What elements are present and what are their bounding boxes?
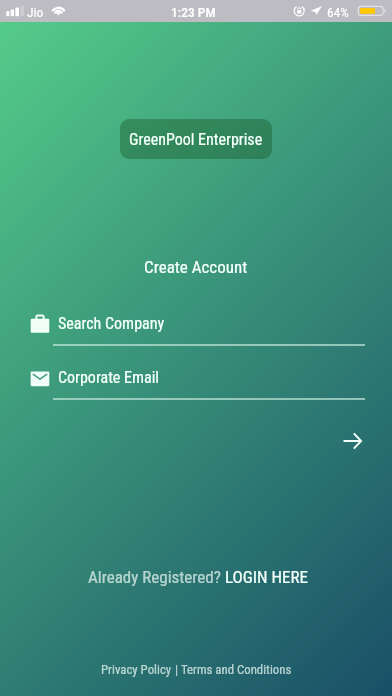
staticText: | [172, 662, 181, 677]
staticText: Search Company [58, 314, 165, 333]
staticText: GreenPool Enterprise [129, 130, 263, 149]
staticText: Corporate Email [58, 368, 160, 387]
staticText: 64% [327, 4, 349, 20]
button[interactable]: Corporate Email [27, 364, 365, 404]
staticText: Already Registered? [88, 567, 225, 587]
button[interactable]: LOGIN HERE [225, 567, 308, 587]
staticText: 1:23 PM [171, 4, 216, 20]
button[interactable]: Next [330, 418, 375, 463]
button[interactable]: Privacy Policy [101, 662, 172, 677]
staticText: Jio [27, 4, 44, 20]
button[interactable]: Search Company [27, 309, 365, 350]
staticText: Create Account [144, 257, 248, 277]
button[interactable]: GreenPool Enterprise [120, 119, 272, 159]
button[interactable]: Terms and Conditions [181, 662, 292, 677]
